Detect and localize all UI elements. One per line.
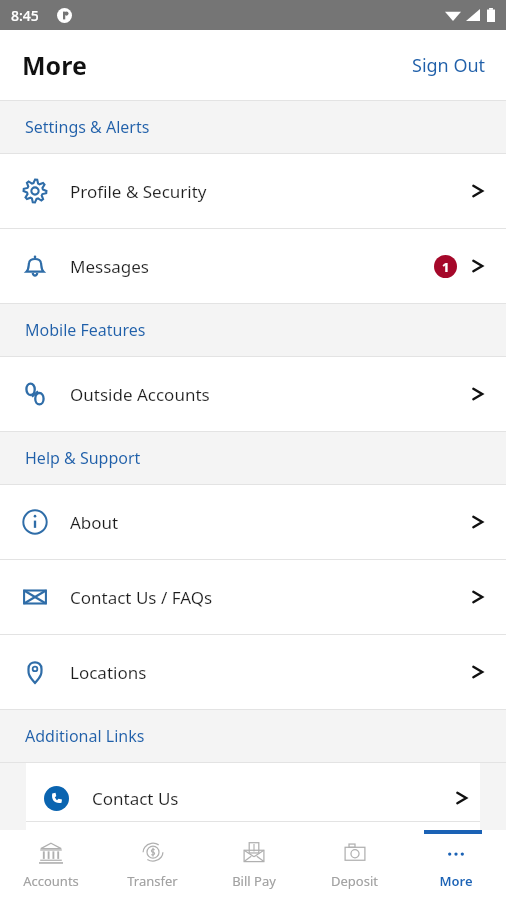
button[interactable]: Contact Us / FAQs	[0, 560, 506, 634]
staticText: Accounts	[23, 872, 79, 890]
staticText: Locations	[70, 661, 471, 684]
button[interactable]: Contact Us	[26, 775, 480, 821]
button[interactable]: More	[405, 830, 506, 890]
button[interactable]: Locations	[0, 635, 506, 709]
button[interactable]: Deposit	[304, 830, 405, 890]
button[interactable]: Outside Accounts	[0, 357, 506, 431]
staticText: Transfer	[127, 872, 178, 890]
staticText: Messages	[70, 255, 434, 278]
staticText: Contact Us / FAQs	[70, 586, 471, 609]
button[interactable]: About	[0, 485, 506, 559]
staticText: More	[22, 48, 87, 82]
staticText: 1	[442, 258, 450, 276]
button[interactable]: Transfer	[102, 830, 203, 890]
staticText: About	[70, 511, 471, 534]
staticText: Bill Pay	[232, 872, 276, 890]
staticText: Deposit	[331, 872, 378, 890]
button[interactable]: Messages	[0, 229, 506, 303]
staticText: More	[439, 872, 473, 890]
staticText: Settings & Alerts	[25, 116, 150, 138]
staticText: Sign Out	[412, 53, 486, 78]
other: Bill Pay	[239, 840, 269, 867]
button[interactable]: Profile & Security	[0, 154, 506, 228]
staticText: Help & Support	[25, 447, 141, 469]
other: Deposit	[340, 840, 370, 867]
button[interactable]: Sign Out	[392, 39, 506, 92]
staticText: Mobile Features	[25, 319, 146, 341]
button[interactable]: Accounts	[0, 830, 102, 890]
staticText: Profile & Security	[70, 180, 471, 203]
staticText: 8:45	[11, 6, 39, 25]
staticText: Outside Accounts	[70, 383, 471, 406]
other: Transfer	[138, 840, 168, 867]
other: Accounts	[36, 840, 66, 867]
button[interactable]: Bill Pay	[203, 830, 304, 890]
staticText: Contact Us	[92, 787, 455, 810]
staticText: Additional Links	[25, 725, 145, 747]
other: More	[441, 840, 471, 867]
